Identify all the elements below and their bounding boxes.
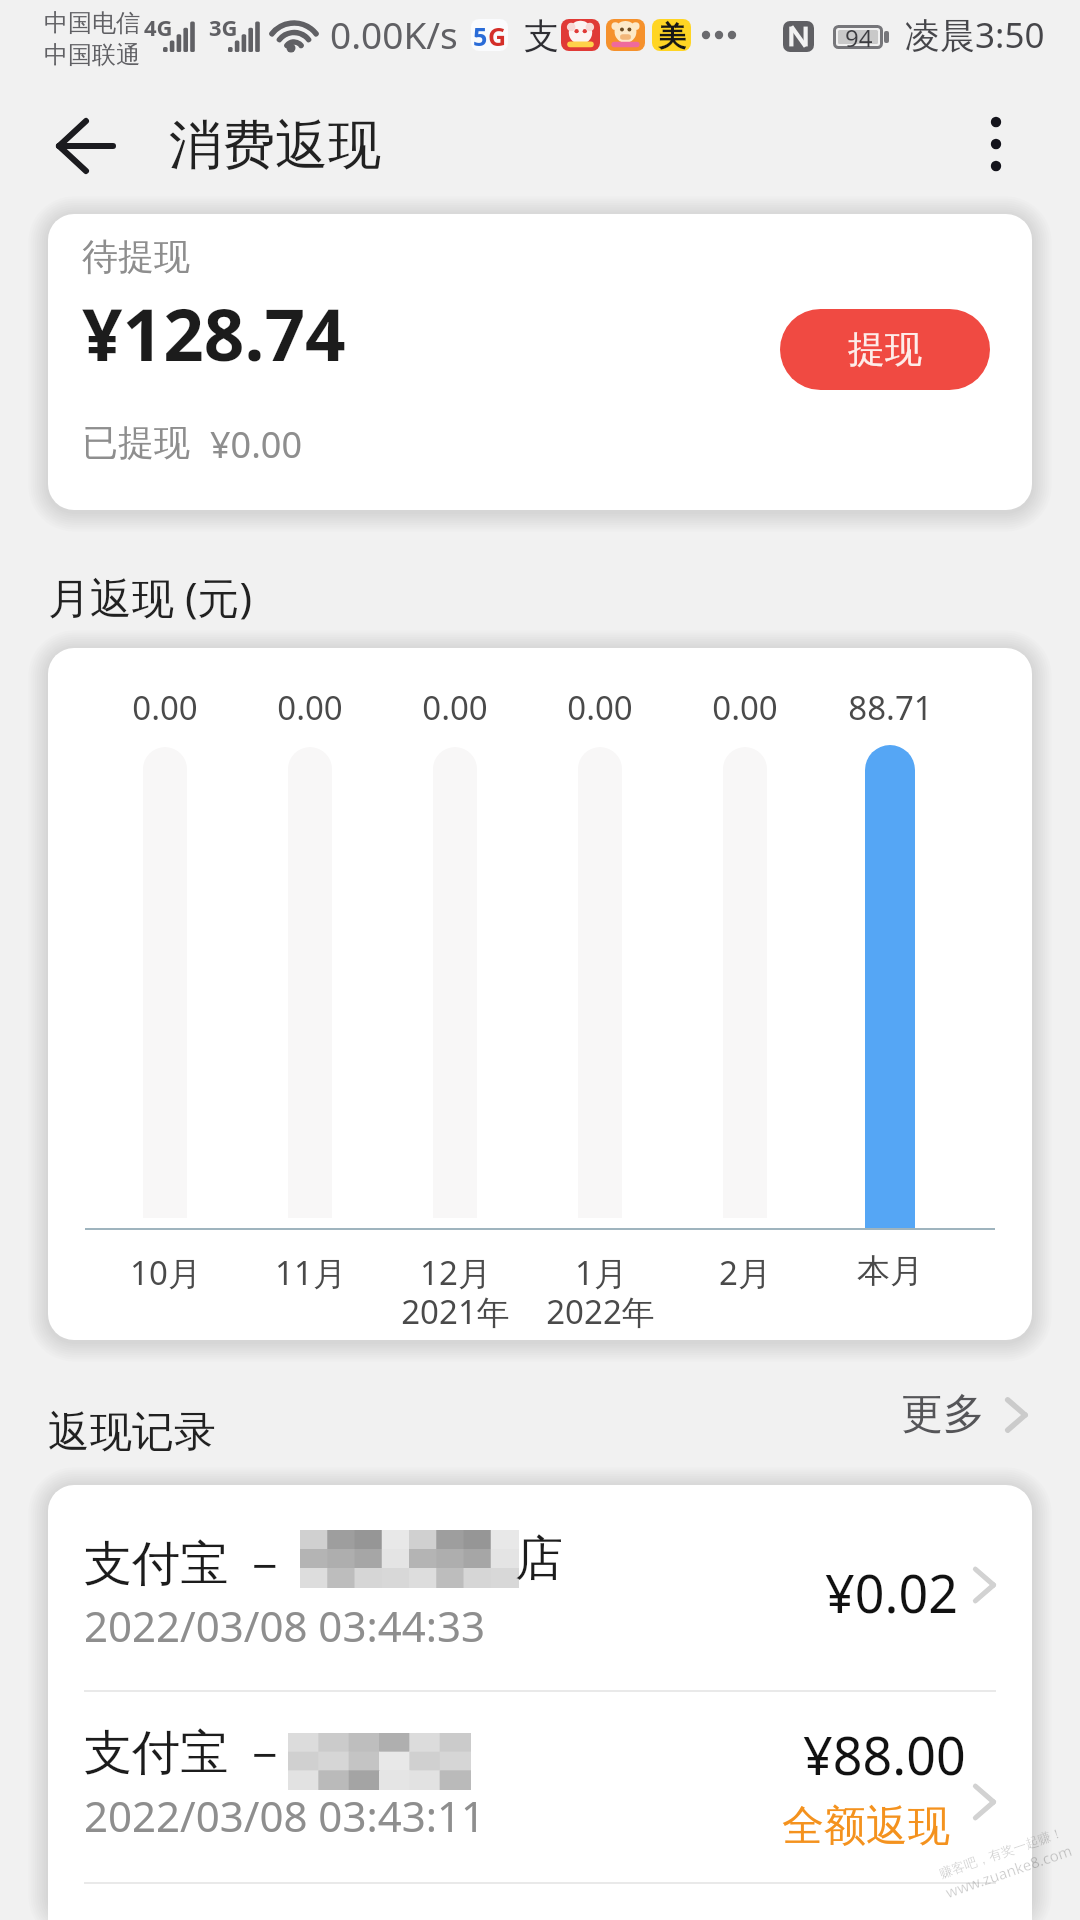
staticText: 2022年 — [546, 1289, 655, 1334]
button[interactable]: 更多 — [883, 1376, 1057, 1453]
staticText: 凌晨3:50 — [905, 11, 1045, 59]
staticText: 支付宝 － — [84, 1529, 289, 1595]
staticText: 94 — [845, 21, 873, 54]
staticText: 更多 — [901, 1388, 985, 1441]
staticText: ¥128.74 — [82, 285, 346, 382]
staticText: 0.00 — [132, 685, 198, 730]
staticText: 2021年 — [401, 1289, 510, 1334]
staticText: 支 — [524, 14, 559, 58]
staticText: 3G — [209, 12, 238, 42]
staticText: 支付宝 － — [84, 1718, 289, 1784]
staticText: 已提现 — [82, 420, 190, 465]
staticText: 0.00 — [712, 685, 778, 730]
staticText: 12月 — [420, 1250, 491, 1295]
staticText: 88.71 — [848, 685, 933, 730]
button[interactable]: 支付宝 － — [48, 1485, 1032, 1689]
staticText: 返现记录 — [48, 1406, 216, 1459]
staticText: 美 — [658, 19, 686, 51]
staticText: ¥88.00 — [803, 1719, 966, 1790]
staticText: 待提现 — [82, 234, 190, 279]
staticText: 0.00 — [567, 685, 633, 730]
button[interactable]: More options — [948, 98, 1044, 194]
staticText: G — [488, 19, 507, 51]
staticText: 赚客吧，有奖一起赚！ — [937, 1824, 1065, 1881]
staticText: 全额返现 — [782, 1800, 950, 1853]
staticText: 0.00 — [422, 685, 488, 730]
staticText: 2022/03/08 03:44:33 — [84, 1597, 486, 1654]
staticText: 本月 — [857, 1250, 923, 1292]
staticText: 4G — [144, 12, 173, 42]
staticText: 10月 — [130, 1250, 201, 1295]
button[interactable]: 提现 — [780, 309, 990, 390]
staticText: 11月 — [275, 1250, 346, 1295]
staticText: 0.00K/s — [330, 9, 458, 59]
staticText: 1月 — [575, 1250, 627, 1295]
staticText: 消费返现 — [169, 112, 381, 179]
button[interactable]: 支付宝 － — [48, 1690, 1032, 1894]
staticText: 0.00 — [277, 685, 343, 730]
staticText: 2022/03/08 03:43:11 — [84, 1787, 486, 1844]
staticText: www.zuanke8.com — [943, 1840, 1075, 1902]
staticText: 店 — [515, 1529, 563, 1589]
staticText: 中国电信 — [44, 8, 140, 38]
staticText: 提现 — [848, 326, 922, 373]
staticText: ¥0.00 — [210, 420, 303, 469]
staticText: ¥0.02 — [825, 1557, 958, 1628]
staticText: 月返现 (元) — [48, 568, 253, 625]
staticText: 2月 — [719, 1250, 771, 1295]
button[interactable]: Back — [24, 104, 128, 208]
staticText: 中国联通 — [44, 40, 140, 70]
staticText: 5 — [473, 19, 488, 51]
